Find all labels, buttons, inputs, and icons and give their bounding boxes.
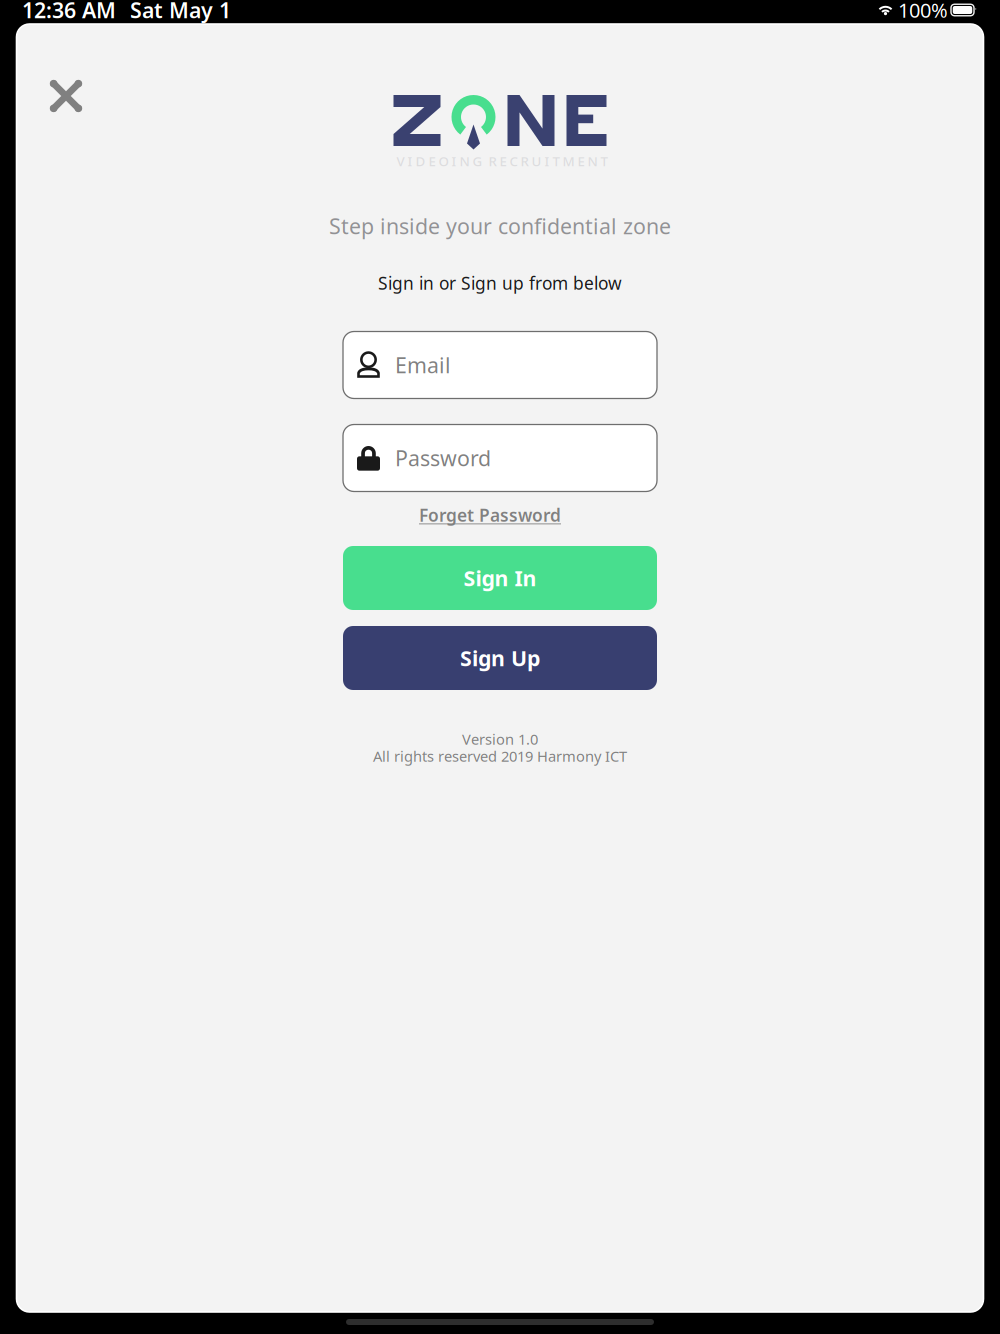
staticText: Version 1.0 <box>462 729 538 749</box>
button[interactable]: Sign Up <box>343 626 657 690</box>
staticText: Sat May 1 <box>130 0 231 24</box>
staticText: Step inside your confidential zone <box>329 212 671 240</box>
staticText: All rights reserved 2019 Harmony ICT <box>373 746 627 766</box>
staticText: Forget Password <box>419 503 561 526</box>
button[interactable]: Forget Password <box>360 497 620 533</box>
staticText: Email <box>395 351 451 379</box>
staticText: 12:36 AM <box>22 0 116 24</box>
staticText: Sign in or Sign up from below <box>378 271 622 294</box>
staticText: Sign Up <box>460 644 540 672</box>
button[interactable]: Sign In <box>343 546 657 610</box>
staticText: 100% <box>898 0 948 23</box>
staticText: Password <box>395 444 491 472</box>
staticText: V I D E O I N G R E C R U I T M E N T <box>396 152 607 170</box>
staticText: Sign In <box>463 564 536 592</box>
button[interactable]: Close <box>38 68 94 124</box>
